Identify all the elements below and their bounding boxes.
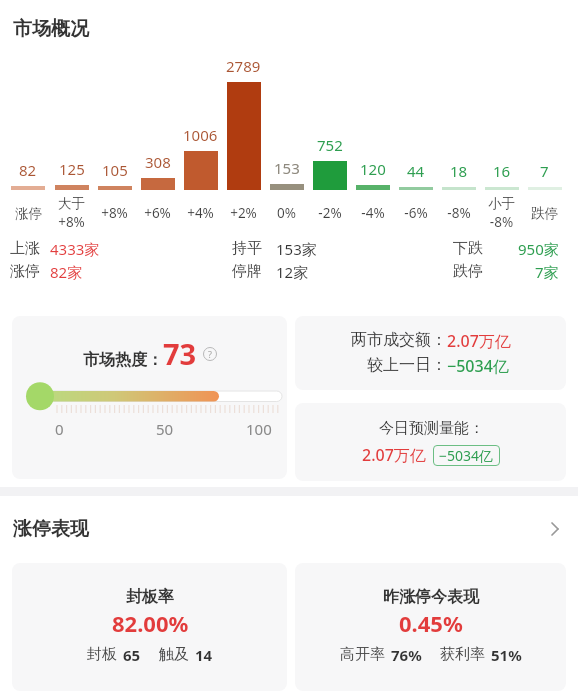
- button[interactable]: 昨涨停今表现: [295, 563, 566, 691]
- staticText: 较上一日：: [367, 355, 447, 375]
- staticText: 2.07万亿: [447, 330, 511, 352]
- staticText: 停牌: [232, 262, 262, 281]
- staticText: 82家: [50, 262, 83, 282]
- staticText: 触及: [159, 645, 189, 664]
- button[interactable]: 封板率: [12, 563, 287, 691]
- staticText: 两市成交额：: [351, 330, 447, 350]
- staticText: 跌停: [453, 262, 483, 281]
- staticText: 高开率: [340, 645, 385, 664]
- staticText: 小于 -8%: [488, 195, 515, 231]
- staticText: 今日预测量能：: [379, 419, 484, 438]
- staticText: 73: [163, 334, 197, 373]
- staticText: 2.07万亿: [362, 444, 426, 466]
- staticText: 市场热度：: [83, 350, 163, 370]
- staticText: 封板率: [126, 587, 174, 607]
- staticText: 120: [360, 159, 386, 179]
- staticText: +4%: [187, 204, 214, 222]
- button[interactable]: 今日预测量能：: [295, 403, 566, 481]
- staticText: 2789: [226, 56, 261, 76]
- staticText: 752: [317, 135, 343, 155]
- staticText: 获利率: [440, 645, 485, 664]
- staticText: 76%: [391, 645, 422, 665]
- staticText: 18: [450, 161, 468, 181]
- staticText: 0: [55, 419, 64, 439]
- staticText: 100: [246, 419, 272, 439]
- staticText: 4333家: [50, 239, 100, 259]
- staticText: 0.45%: [399, 608, 463, 638]
- staticText: 82.00%: [112, 608, 189, 638]
- staticText: 涨停: [15, 205, 42, 222]
- staticText: -2%: [318, 204, 342, 222]
- staticText: 持平: [232, 239, 262, 258]
- staticText: 16: [493, 161, 511, 181]
- staticText: 44: [407, 161, 425, 181]
- staticText: ?: [208, 348, 212, 360]
- staticText: +2%: [230, 204, 257, 222]
- staticText: 153: [274, 158, 300, 178]
- staticText: 65: [123, 645, 141, 665]
- staticText: 市场概况: [13, 17, 89, 41]
- staticText: 涨停: [10, 262, 40, 281]
- staticText: -4%: [361, 204, 385, 222]
- staticText: -6%: [404, 204, 428, 222]
- staticText: 125: [59, 159, 85, 179]
- staticText: 0%: [277, 204, 296, 222]
- staticText: 跌停: [531, 205, 558, 222]
- button[interactable]: 两市成交额：: [295, 316, 566, 390]
- staticText: -8%: [447, 204, 471, 222]
- staticText: 51%: [491, 645, 522, 665]
- staticText: +6%: [144, 204, 171, 222]
- staticText: 14: [195, 645, 213, 665]
- staticText: 82: [19, 160, 37, 180]
- staticText: −5034亿: [439, 446, 494, 465]
- staticText: 153家: [276, 239, 317, 259]
- staticText: 大于 +8%: [58, 195, 85, 231]
- staticText: 封板: [87, 645, 117, 664]
- button[interactable]: 市场热度：: [12, 316, 287, 479]
- staticText: 12家: [276, 262, 309, 282]
- staticText: 1006: [183, 125, 218, 145]
- staticText: −5034亿: [447, 355, 509, 377]
- staticText: 105: [102, 160, 128, 180]
- staticText: 涨停表现: [13, 517, 89, 541]
- staticText: 7: [540, 161, 549, 181]
- staticText: 7家: [535, 262, 559, 282]
- staticText: 下跌: [453, 239, 483, 258]
- staticText: 950家: [518, 239, 559, 259]
- staticText: 昨涨停今表现: [383, 587, 479, 607]
- staticText: 上涨: [10, 239, 40, 258]
- button[interactable]: 涨停表现: [13, 517, 559, 541]
- staticText: 308: [145, 152, 171, 172]
- staticText: 50: [156, 419, 174, 439]
- staticText: +8%: [101, 204, 128, 222]
